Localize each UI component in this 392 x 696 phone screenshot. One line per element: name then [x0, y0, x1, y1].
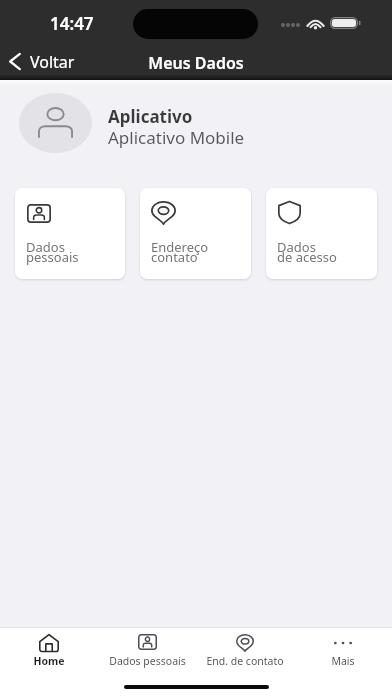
staticText: Dados pessoais — [109, 654, 186, 668]
staticText: 14:47 — [50, 12, 94, 35]
staticText: Voltar — [30, 51, 75, 73]
staticText: Mais — [331, 654, 355, 668]
staticText: Aplicativo — [108, 105, 193, 128]
button[interactable]: Home — [0, 628, 98, 673]
staticText: pessoais — [26, 248, 79, 266]
staticText: Home — [33, 654, 65, 668]
staticText: Dados — [277, 238, 316, 256]
staticText: de acesso — [277, 248, 337, 266]
button[interactable]: End. de contato — [196, 628, 294, 673]
staticText: End. de contato — [206, 654, 284, 668]
button[interactable]: Mais — [294, 628, 392, 673]
button[interactable]: Endereço — [140, 188, 251, 279]
staticText: Endereço — [151, 238, 209, 256]
button[interactable]: Voltar — [3, 48, 85, 74]
staticText: Aplicativo Mobile — [108, 126, 245, 149]
staticText: contato — [151, 248, 198, 266]
button[interactable]: Dados pessoais — [98, 628, 196, 673]
staticText: Dados — [26, 238, 65, 256]
staticText: Meus Dados — [0, 52, 392, 74]
button[interactable]: Dados — [266, 188, 377, 279]
button[interactable]: Dados — [15, 188, 125, 279]
